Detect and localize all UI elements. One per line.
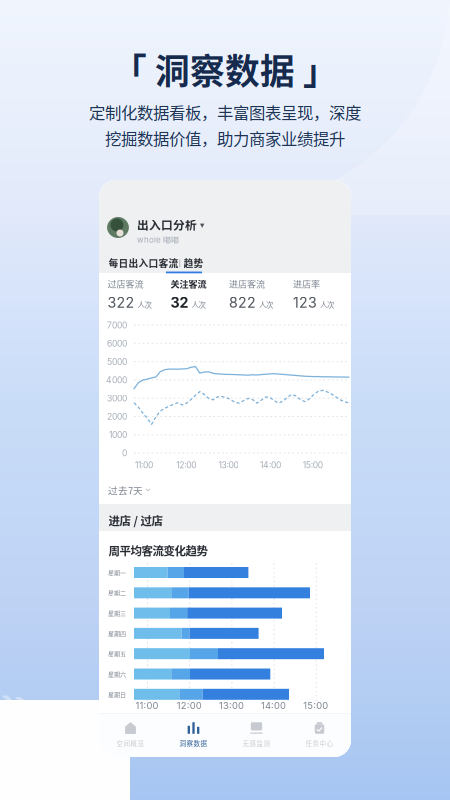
staticText: 3000 bbox=[107, 393, 127, 403]
button[interactable]: 出入口分析 bbox=[137, 216, 204, 233]
staticText: 4000 bbox=[106, 375, 127, 385]
staticText: 11:00 bbox=[135, 460, 153, 470]
staticText: 322 bbox=[107, 294, 134, 311]
button[interactable]: 趋势 bbox=[183, 256, 203, 270]
staticText: 13:00 bbox=[218, 460, 238, 470]
staticText: 1000 bbox=[109, 430, 127, 440]
staticText: 星期四 bbox=[108, 629, 126, 638]
staticText: 进店客流 bbox=[229, 277, 265, 290]
button[interactable]: 无感监测 bbox=[225, 718, 288, 754]
button[interactable]: 洞察数据 bbox=[162, 718, 225, 754]
staticText: 关注客流 bbox=[170, 277, 206, 290]
staticText: 洞察数据 bbox=[179, 738, 207, 748]
staticText: 进店 / 过店 bbox=[108, 512, 162, 529]
button[interactable]: 每日出入口客流 bbox=[108, 256, 178, 270]
staticText: 6000 bbox=[107, 338, 127, 349]
staticText: 14:00 bbox=[261, 700, 286, 711]
staticText: 0 bbox=[122, 448, 127, 458]
staticText: 无感监测 bbox=[242, 738, 270, 748]
staticText: 星期六 bbox=[108, 670, 126, 678]
staticText: 12:00 bbox=[177, 700, 202, 711]
staticText: 空间概览 bbox=[116, 738, 144, 748]
staticText: 5000 bbox=[107, 357, 127, 367]
staticText: 周平均客流变化趋势 bbox=[108, 542, 207, 559]
staticText: 任务中心 bbox=[305, 738, 333, 748]
staticText: ⌄ bbox=[145, 484, 151, 493]
staticText: 趋势 bbox=[183, 256, 203, 270]
staticText: 出入口分析 bbox=[137, 216, 197, 233]
staticText: 人次 bbox=[137, 299, 151, 310]
staticText: 过店客流 bbox=[107, 277, 143, 290]
staticText: 13:00 bbox=[219, 700, 244, 711]
staticText: 丨 bbox=[175, 256, 184, 269]
staticText: 11:00 bbox=[135, 700, 158, 711]
staticText: 定制化数据看板，丰富图表呈现，深度 bbox=[89, 100, 361, 124]
staticText: whole 嘟嘟 bbox=[137, 235, 179, 245]
staticText: 人次 bbox=[259, 299, 273, 310]
staticText: 星期一 bbox=[108, 568, 126, 577]
staticText: 进店率 bbox=[293, 277, 320, 290]
staticText: 人次 bbox=[191, 299, 205, 310]
staticText: 星期二 bbox=[108, 588, 126, 597]
staticText: 「 洞察数据 」 bbox=[112, 44, 338, 94]
staticText: 过去7天 bbox=[108, 483, 143, 497]
staticText: 每日出入口客流 bbox=[108, 256, 178, 270]
staticText: 822 bbox=[229, 294, 256, 311]
staticText: 2000 bbox=[107, 411, 127, 422]
staticText: 15:00 bbox=[303, 700, 328, 711]
staticText: 12:00 bbox=[176, 460, 196, 470]
staticText: 7000 bbox=[107, 320, 127, 330]
staticText: 123 bbox=[293, 294, 317, 311]
staticText: 挖掘数据价值，助力商家业绩提升 bbox=[105, 126, 345, 150]
staticText: 15:00 bbox=[303, 460, 323, 470]
staticText: 星期日 bbox=[108, 690, 126, 699]
staticText: 人次 bbox=[320, 299, 334, 310]
button[interactable]: 过去7天 bbox=[108, 483, 151, 497]
staticText: 星期三 bbox=[108, 609, 126, 618]
staticText: 32 bbox=[170, 294, 188, 311]
button[interactable]: 任务中心 bbox=[288, 718, 351, 754]
button[interactable]: 空间概览 bbox=[99, 718, 162, 754]
staticText: ▾ bbox=[200, 220, 204, 230]
staticText: 星期五 bbox=[108, 649, 126, 658]
staticText: 14:00 bbox=[260, 460, 281, 470]
